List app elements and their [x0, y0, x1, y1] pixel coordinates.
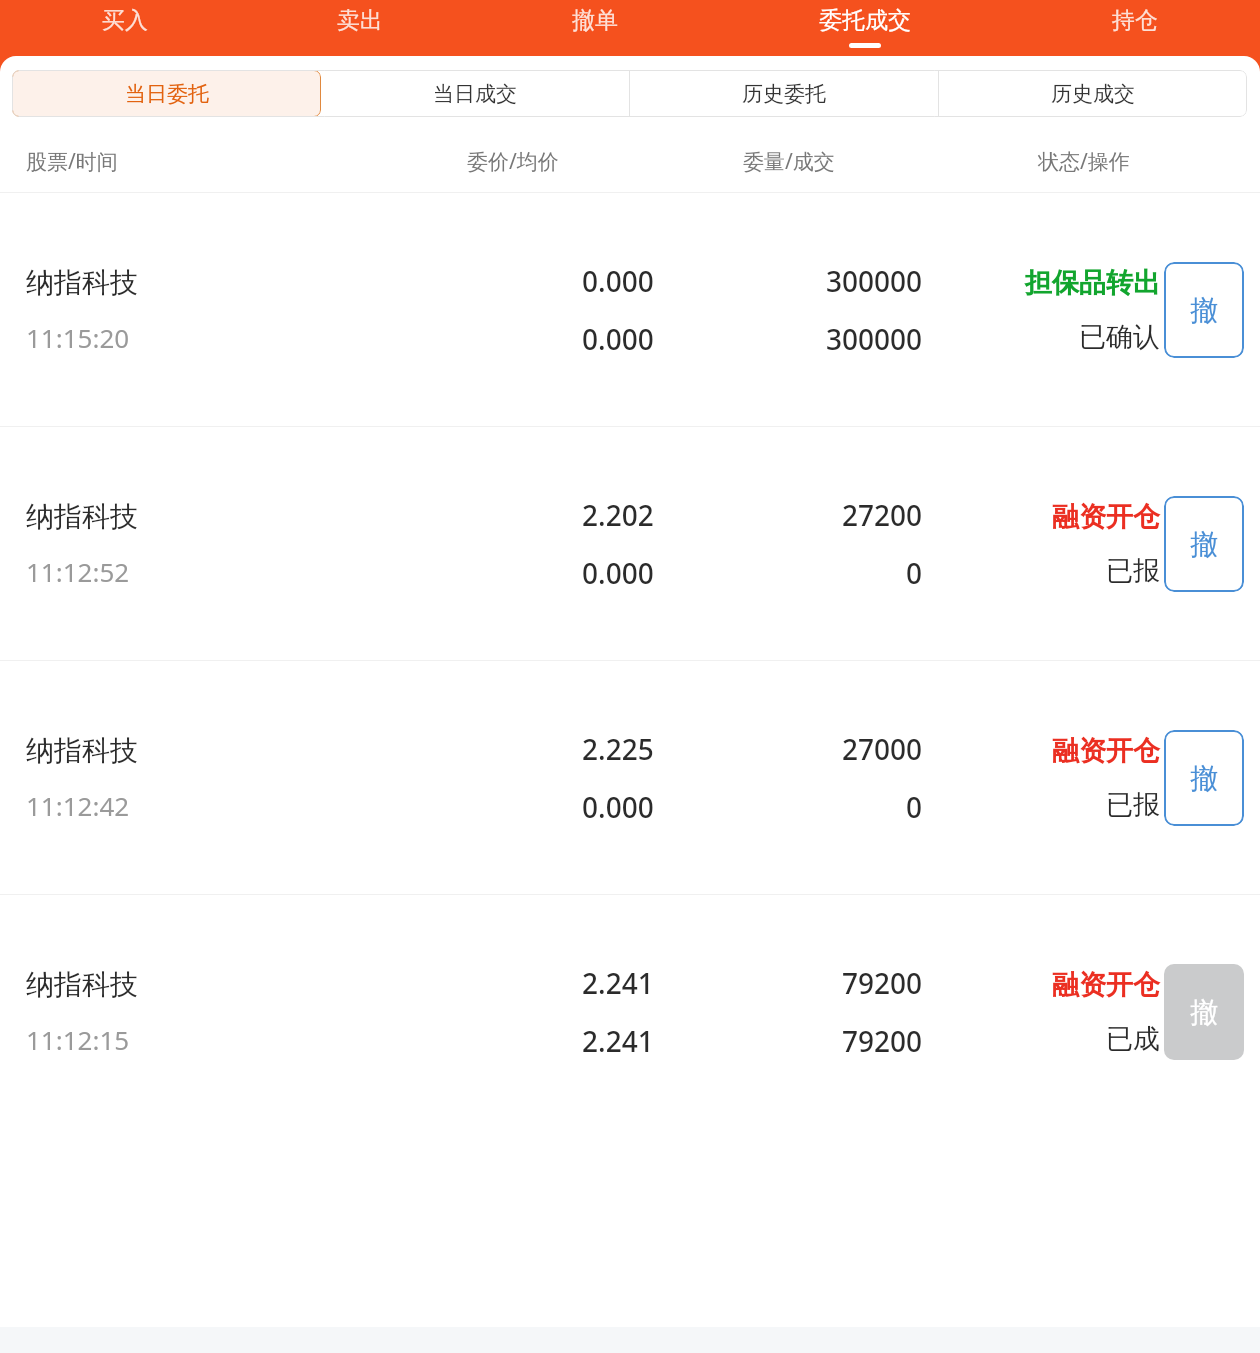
staticText: 撤: [1190, 761, 1218, 796]
button[interactable]: 当日委托: [12, 70, 321, 117]
button[interactable]: 当日成交: [321, 70, 629, 117]
staticText: 2.241: [582, 1022, 654, 1060]
staticText: 历史委托: [742, 81, 826, 107]
staticText: 融资开仓: [1052, 500, 1160, 534]
button[interactable]: 撤单: [1164, 262, 1244, 358]
button[interactable]: 历史成交: [939, 70, 1247, 117]
staticText: 0.000: [582, 554, 654, 592]
staticText: 卖出: [337, 6, 383, 35]
button[interactable]: 纳指科技: [0, 895, 1260, 1128]
button[interactable]: 纳指科技: [0, 427, 1260, 660]
staticText: 纳指科技: [26, 733, 138, 768]
staticText: 融资开仓: [1052, 968, 1160, 1002]
staticText: 纳指科技: [26, 967, 138, 1002]
staticText: 已报: [1106, 788, 1160, 822]
staticText: 撤: [1190, 995, 1218, 1030]
staticText: 2.225: [582, 730, 654, 768]
button[interactable]: 买入: [8, 0, 242, 56]
staticText: 已成: [1106, 1022, 1160, 1056]
staticText: 当日委托: [125, 81, 209, 107]
staticText: 撤单: [572, 6, 618, 35]
staticText: 纳指科技: [26, 265, 138, 300]
staticText: 当日成交: [433, 81, 517, 107]
button[interactable]: 委托成交: [712, 0, 1017, 56]
button[interactable]: 撤单: [1164, 496, 1244, 592]
staticText: 撤: [1190, 293, 1218, 328]
button[interactable]: 撤单: [477, 0, 712, 56]
button[interactable]: 卖出: [242, 0, 477, 56]
staticText: 纳指科技: [26, 499, 138, 534]
button[interactable]: 撤单: [1164, 964, 1244, 1060]
staticText: 300000: [826, 262, 923, 300]
staticText: 2.241: [582, 964, 654, 1002]
staticText: 买入: [102, 6, 148, 35]
staticText: 11:12:42: [26, 788, 130, 823]
staticText: 持仓: [1112, 6, 1158, 35]
button[interactable]: 历史委托: [630, 70, 938, 117]
staticText: 2.202: [582, 496, 654, 534]
staticText: 0.000: [582, 320, 654, 358]
staticText: 79200: [842, 964, 923, 1002]
staticText: 27200: [842, 496, 923, 534]
staticText: 11:12:15: [26, 1022, 130, 1057]
staticText: 11:12:52: [26, 554, 130, 589]
staticText: 状态/操作: [1038, 147, 1130, 176]
staticText: 担保品转出: [1025, 266, 1160, 300]
staticText: 79200: [842, 1022, 923, 1060]
staticText: 0.000: [582, 262, 654, 300]
staticText: 0.000: [582, 788, 654, 826]
button[interactable]: 撤单: [1164, 730, 1244, 826]
staticText: 300000: [826, 320, 923, 358]
button[interactable]: 纳指科技: [0, 661, 1260, 894]
staticText: 委价/均价: [467, 147, 559, 176]
staticText: 已确认: [1079, 320, 1160, 354]
staticText: 股票/时间: [26, 147, 118, 176]
staticText: 融资开仓: [1052, 734, 1160, 768]
staticText: 11:15:20: [26, 320, 130, 355]
staticText: 已报: [1106, 554, 1160, 588]
staticText: 委托成交: [819, 6, 911, 35]
staticText: 27000: [842, 730, 923, 768]
staticText: 委量/成交: [743, 147, 835, 176]
button[interactable]: 纳指科技: [0, 193, 1260, 426]
button[interactable]: 持仓: [1017, 0, 1252, 56]
staticText: 0: [906, 554, 923, 592]
staticText: 撤: [1190, 527, 1218, 562]
staticText: 历史成交: [1051, 81, 1135, 107]
staticText: 0: [906, 788, 923, 826]
